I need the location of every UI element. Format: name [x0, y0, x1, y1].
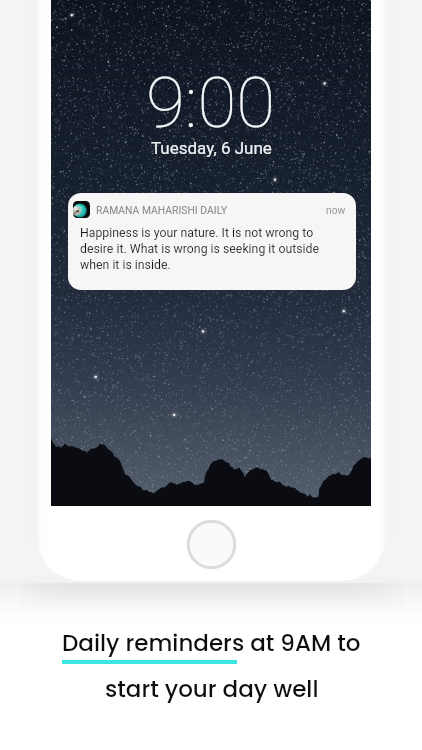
staticText: Daily reminders at 9AM to: [62, 627, 361, 659]
staticText: now: [326, 204, 346, 216]
staticText: Happiness is your nature. It is not wron…: [80, 226, 342, 272]
staticText: start your day well: [105, 673, 319, 705]
staticText: Tuesday, 6 June: [151, 138, 272, 158]
staticText: RAMANA MAHARISHI DAILY: [96, 204, 228, 216]
button[interactable]: RAMANA MAHARISHI DAILY: [68, 193, 356, 290]
staticText: 9:00: [146, 61, 276, 144]
